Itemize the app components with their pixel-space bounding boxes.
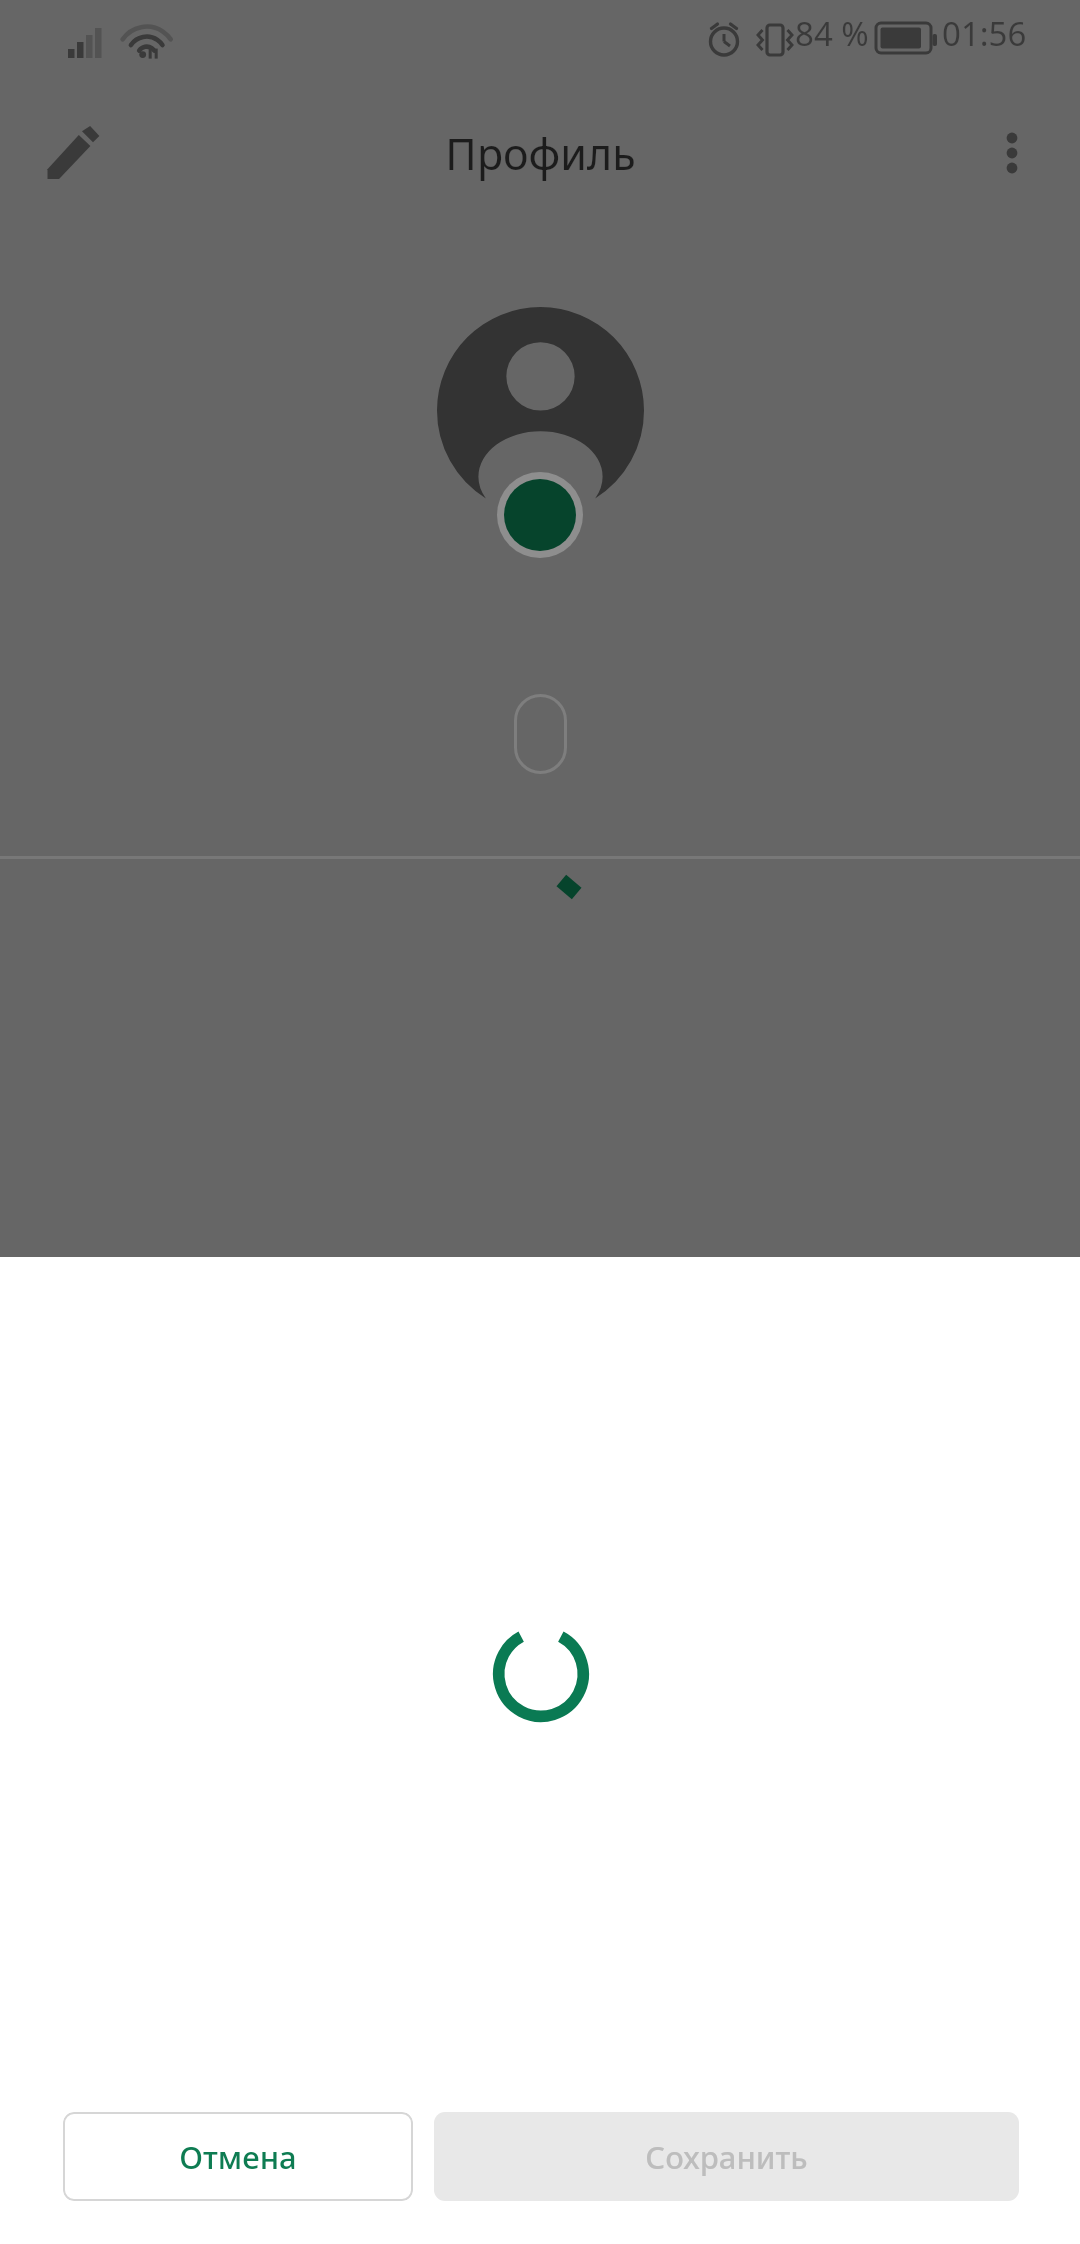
staticText: Отмена bbox=[179, 2136, 297, 2178]
staticText: 01:56 bbox=[942, 11, 1027, 56]
button[interactable]: Отмена bbox=[63, 2112, 413, 2201]
staticText: Профиль bbox=[445, 124, 636, 183]
button[interactable]: Редактировать bbox=[20, 100, 126, 206]
staticText: Сохранить bbox=[645, 2136, 808, 2178]
button[interactable]: Сохранить bbox=[434, 2112, 1019, 2201]
button[interactable]: Ещё bbox=[966, 100, 1058, 206]
button[interactable]: Изменить фото bbox=[504, 479, 576, 551]
staticText: 84 % bbox=[795, 11, 869, 56]
